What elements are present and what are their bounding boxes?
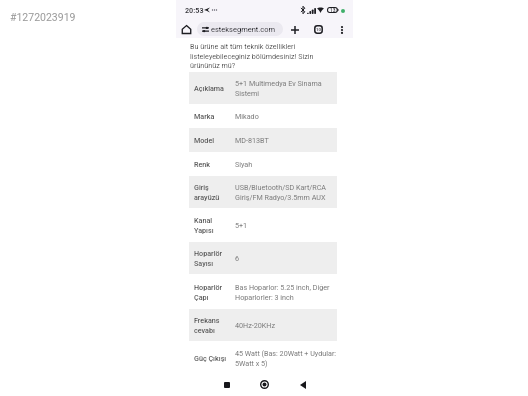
staticText: Giriş arayüzü bbox=[194, 183, 228, 201]
button[interactable]: More options bbox=[333, 21, 350, 38]
button[interactable]: Model bbox=[189, 128, 337, 152]
button[interactable]: Hoparlör Sayısı bbox=[189, 242, 337, 274]
staticText: Marka bbox=[194, 112, 228, 120]
staticText: Siyah bbox=[235, 160, 253, 168]
button[interactable]: Frekans cevabı bbox=[189, 309, 337, 341]
staticText: 40Hz-20KHz bbox=[235, 321, 276, 329]
staticText: MD-813BT bbox=[235, 136, 269, 144]
button[interactable]: New tab bbox=[286, 21, 303, 38]
staticText: USB/Bluetooth/SD Kart/RCA Giriş/FM Radyo… bbox=[235, 183, 337, 201]
staticText: Kanal Yapısı bbox=[194, 216, 228, 234]
staticText: #1272023919 bbox=[10, 11, 76, 23]
staticText: Model bbox=[194, 136, 228, 144]
staticText: 13 bbox=[330, 8, 336, 13]
staticText: Frekans cevabı bbox=[194, 316, 228, 334]
button[interactable]: Renk bbox=[189, 152, 337, 176]
staticText: 6 bbox=[235, 254, 240, 262]
staticText: Bas Hoparlor: 5.25 inch, Diğer Hoparlorl… bbox=[235, 283, 337, 301]
staticText: 5+1 bbox=[235, 221, 248, 229]
staticText: Renk bbox=[194, 160, 228, 168]
staticText: 5+1 Multimedya Ev Sinama Sistemi bbox=[235, 79, 337, 97]
button[interactable]: Giriş arayüzü bbox=[189, 176, 337, 208]
staticText: Bu ürüne ait tüm teknik özellikleri list… bbox=[190, 42, 344, 69]
button[interactable]: esteksegment.com bbox=[197, 22, 283, 36]
staticText: Güç Çıkışı bbox=[194, 354, 228, 362]
button[interactable]: Hoparlör Çapı bbox=[189, 274, 337, 309]
button[interactable]: Güç Çıkışı bbox=[189, 341, 337, 375]
button[interactable]: Tabs bbox=[310, 21, 327, 38]
staticText: esteksegment.com bbox=[211, 25, 276, 34]
staticText: Hoparlör Sayısı bbox=[194, 249, 228, 267]
staticText: 20:53 bbox=[185, 6, 204, 14]
staticText: Mikado bbox=[235, 112, 259, 120]
staticText: 45 Watt (Bas: 20Watt + Uydular: 5Watt x … bbox=[235, 349, 337, 367]
button[interactable]: Marka bbox=[189, 104, 337, 128]
staticText: 10 bbox=[316, 27, 322, 32]
staticText: Açıklama bbox=[194, 84, 228, 92]
staticText: Hoparlör Çapı bbox=[194, 283, 228, 301]
button[interactable]: Home bbox=[178, 21, 195, 38]
button[interactable]: Açıklama bbox=[189, 72, 337, 104]
button[interactable]: Recent apps bbox=[217, 375, 236, 394]
button[interactable]: Back bbox=[293, 375, 312, 394]
button[interactable]: Kanal Yapısı bbox=[189, 208, 337, 242]
button[interactable]: Home bbox=[255, 375, 274, 394]
